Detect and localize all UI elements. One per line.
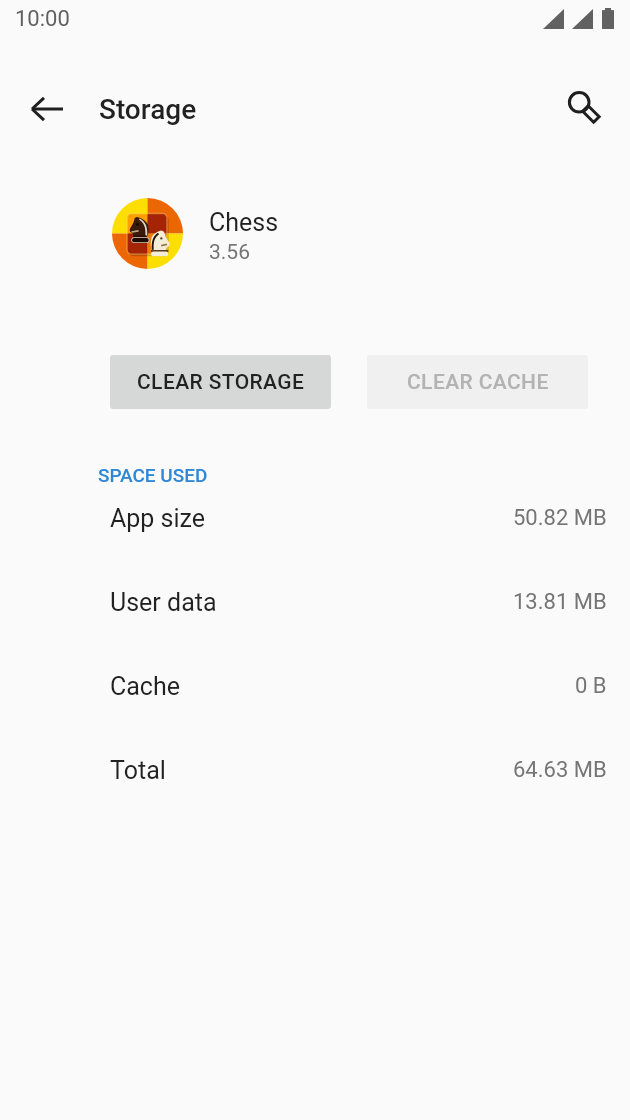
button[interactable]: Total (0, 728, 630, 812)
button[interactable]: Back (21, 82, 74, 135)
button[interactable]: CLEAR STORAGE (110, 355, 331, 409)
staticText: Chess (209, 208, 279, 237)
staticText: 10:00 (15, 6, 70, 32)
staticText: Storage (99, 93, 197, 126)
staticText: 0 B (575, 673, 607, 699)
staticText: User data (110, 588, 217, 617)
staticText: 3.56 (209, 240, 250, 265)
staticText: Total (110, 756, 166, 785)
staticText: SPACE USED (98, 464, 208, 486)
staticText: 50.82 MB (513, 505, 607, 531)
button[interactable]: Search (563, 82, 616, 135)
button[interactable]: User data (0, 560, 630, 644)
staticText: Cache (110, 672, 180, 701)
staticText: CLEAR STORAGE (137, 370, 305, 395)
staticText: App size (110, 504, 206, 533)
staticText: 64.63 MB (513, 757, 607, 783)
button[interactable]: Cache (0, 644, 630, 728)
button[interactable]: CLEAR CACHE (367, 355, 588, 409)
button[interactable]: App size (0, 476, 630, 560)
staticText: CLEAR CACHE (407, 370, 549, 395)
staticText: 13.81 MB (513, 589, 607, 615)
button[interactable]: Chess (0, 189, 630, 277)
